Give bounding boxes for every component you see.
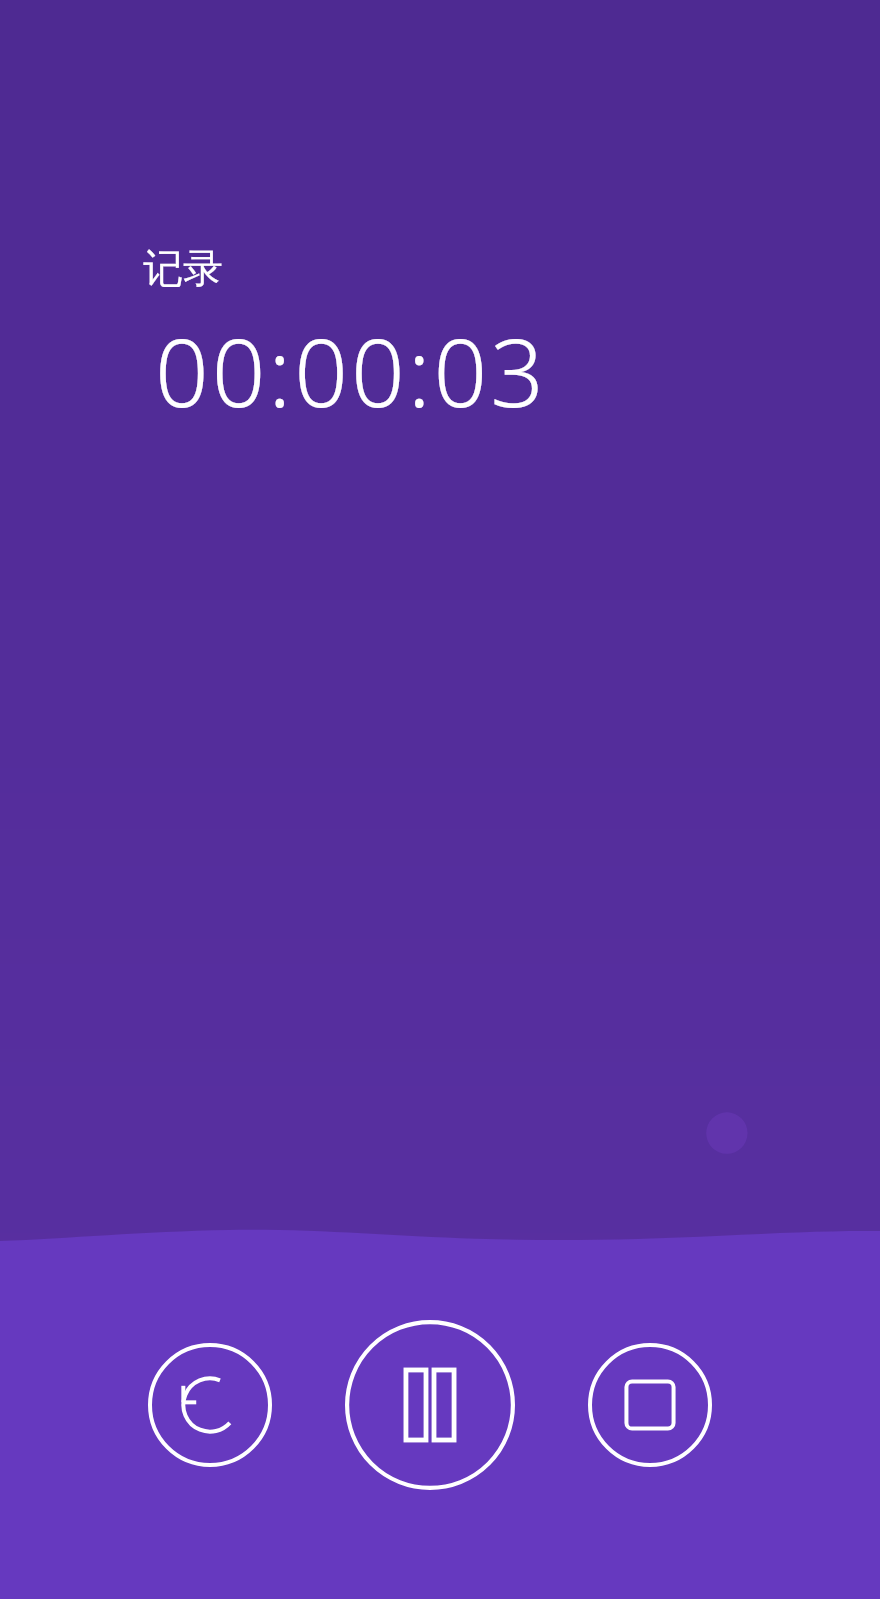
button[interactable]: Reset [148, 1343, 272, 1467]
staticText: 记录 [143, 243, 223, 293]
button[interactable]: Stop [588, 1343, 712, 1467]
staticText: 00:00:03 [155, 307, 547, 435]
button[interactable]: Pause [345, 1320, 515, 1490]
